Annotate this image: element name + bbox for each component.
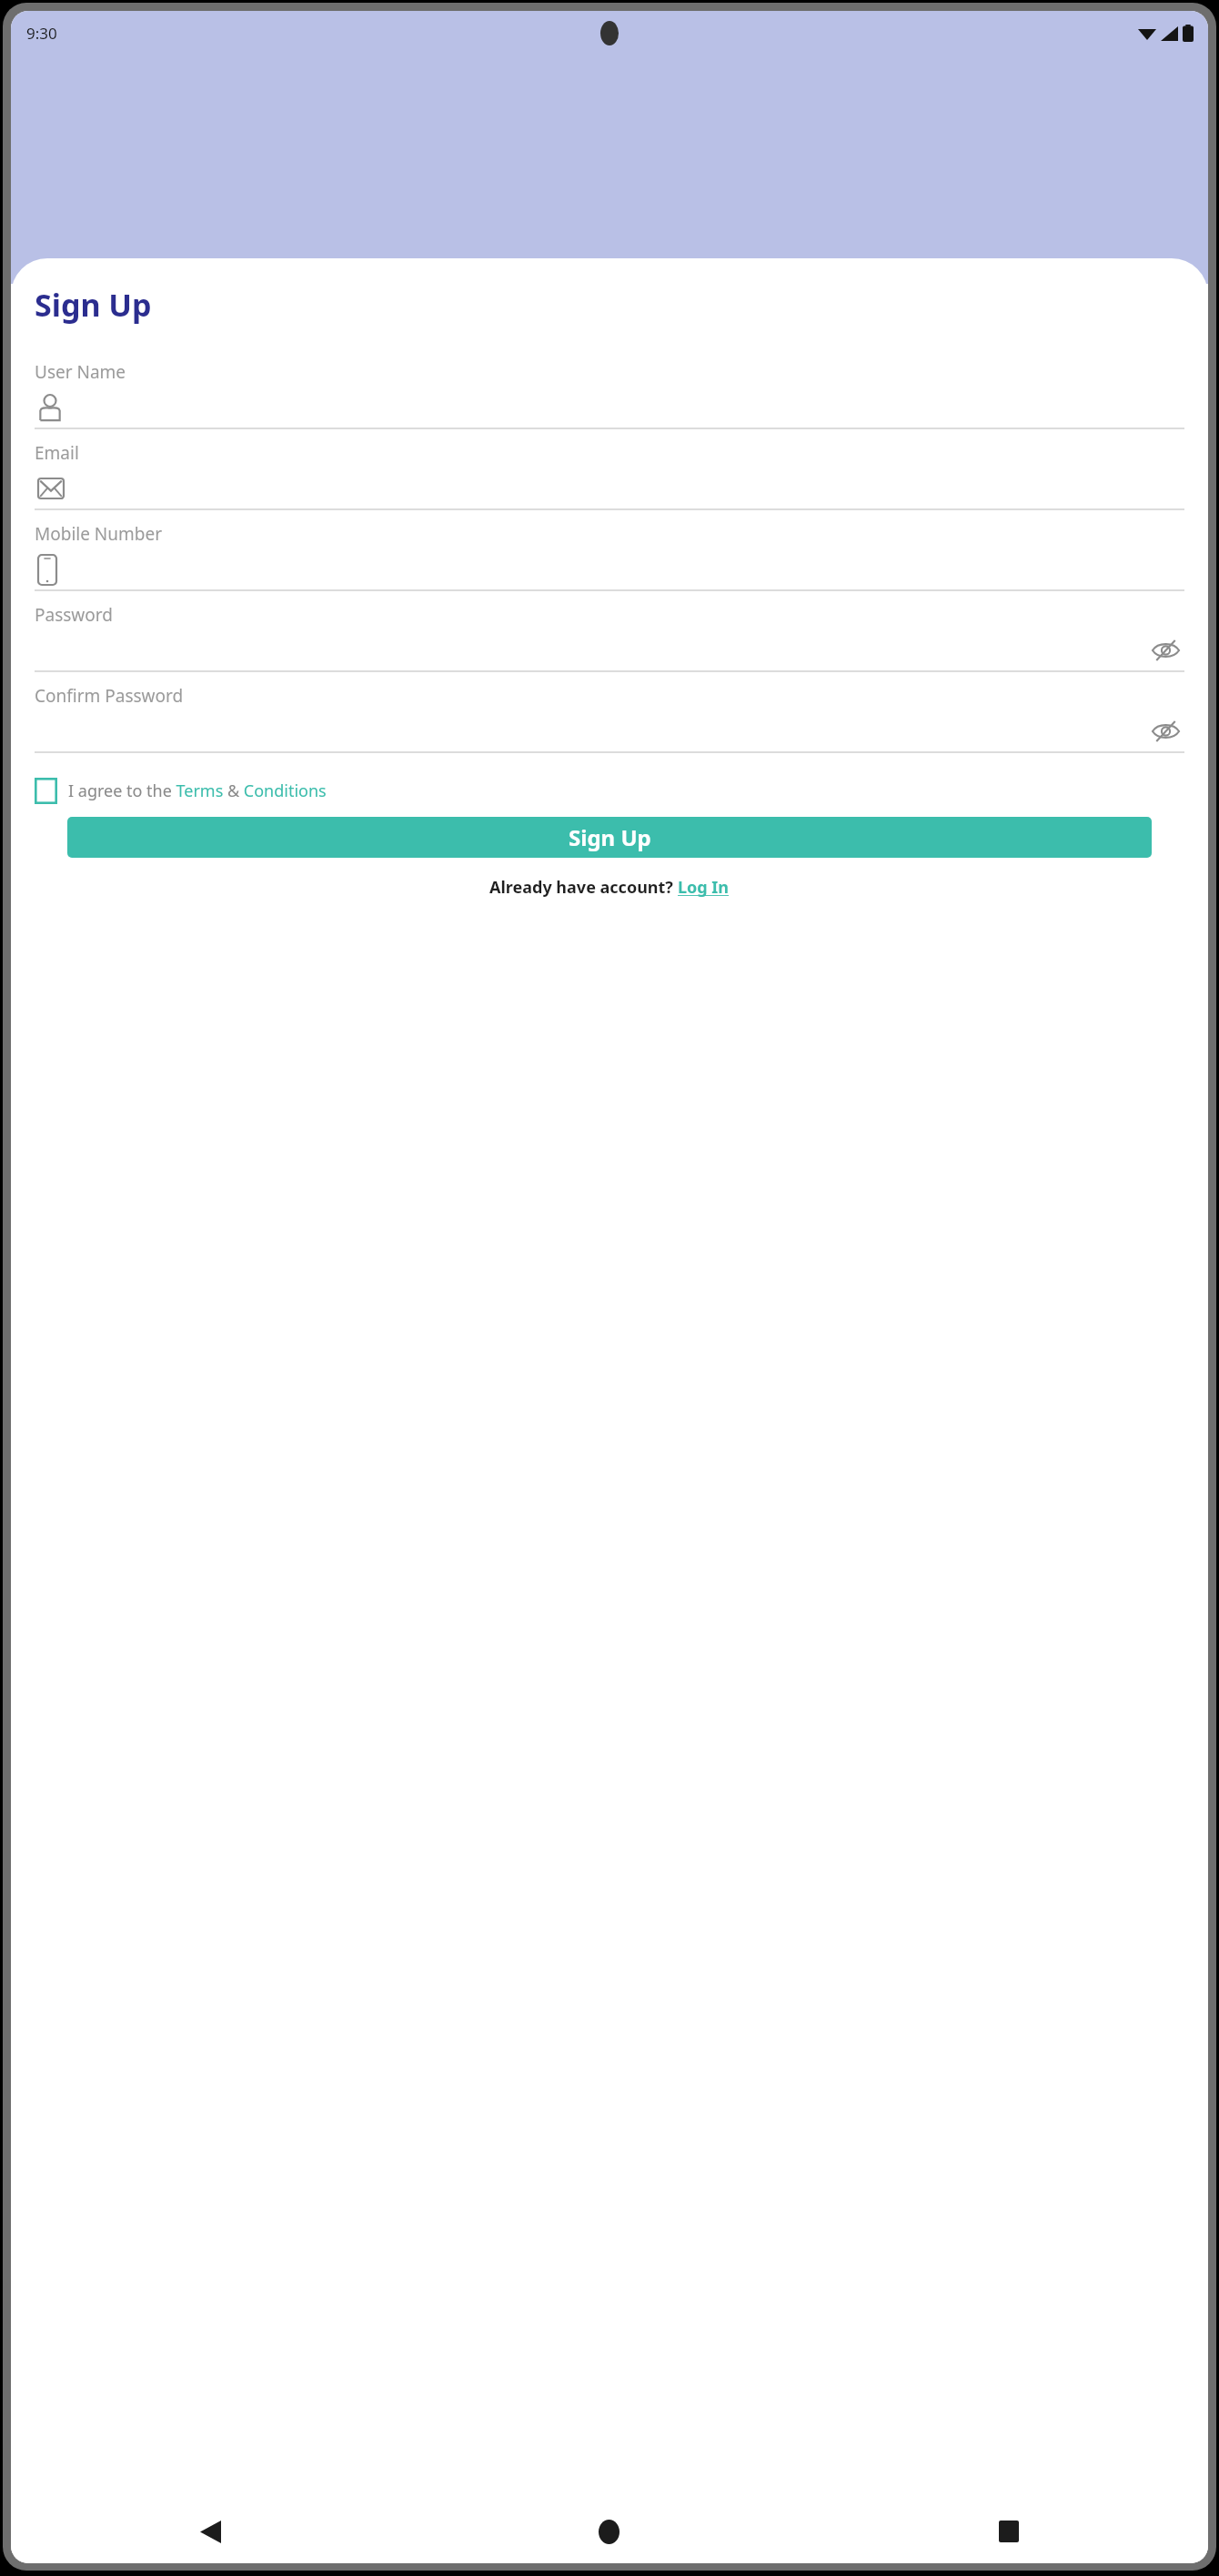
button[interactable]: Password xyxy=(35,603,1184,684)
staticText: Password xyxy=(35,603,113,627)
staticText: Mobile Number xyxy=(35,522,163,546)
staticText: User Name xyxy=(35,360,126,384)
button[interactable]: Home xyxy=(409,2500,809,2563)
button[interactable]: User Name xyxy=(35,360,1184,441)
button[interactable]: Sign Up xyxy=(67,817,1152,858)
button[interactable]: Confirm Password xyxy=(35,684,1184,765)
staticText: 9:30 xyxy=(26,23,57,44)
staticText: Email xyxy=(35,441,79,465)
button[interactable]: Mobile Number xyxy=(35,522,1184,603)
button[interactable]: Log In xyxy=(678,876,730,899)
staticText: Already have account? xyxy=(489,876,678,899)
button[interactable]: Recent apps xyxy=(809,2500,1208,2563)
button[interactable]: Show password xyxy=(1146,631,1184,669)
staticText: Sign Up xyxy=(569,822,651,852)
staticText: I agree to the Terms & Conditions xyxy=(68,780,327,802)
button[interactable]: I agree to the Terms & Conditions xyxy=(35,778,327,804)
button[interactable]: Email xyxy=(35,441,1184,522)
staticText: Confirm Password xyxy=(35,684,184,708)
staticText: Sign Up xyxy=(35,284,152,326)
button[interactable]: Show password xyxy=(1146,712,1184,750)
staticText: Log In xyxy=(678,876,730,899)
button[interactable]: Back xyxy=(11,2500,409,2563)
